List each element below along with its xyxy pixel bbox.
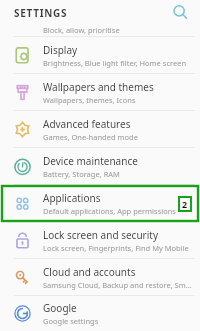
staticText: Lock screen, Fingerprints, Find My Mobil… (43, 243, 189, 253)
staticText: Google (43, 301, 77, 315)
staticText: Applications (43, 191, 101, 205)
button[interactable]: Lock screen and security (0, 222, 200, 258)
staticText: Games, One-handed mode (43, 132, 138, 142)
button[interactable]: Google (0, 296, 200, 331)
button[interactable]: Advanced features (0, 111, 200, 147)
staticText: Display (43, 43, 78, 57)
staticText: Battery, Storage, RAM (43, 169, 120, 179)
button[interactable]: Wallpapers and themes (0, 74, 200, 110)
staticText: Google settings (43, 316, 99, 326)
staticText: Lock screen and security (43, 228, 158, 242)
staticText: Brightness, Blue light filter, Home scre… (43, 58, 187, 68)
button[interactable]: Search (172, 4, 189, 21)
staticText: Default applications, App permissions (43, 206, 176, 216)
button[interactable]: Applications (0, 185, 200, 222)
staticText: 2 (182, 198, 188, 210)
staticText: SETTINGS (14, 6, 68, 20)
staticText: Block, allow, prioritise (43, 25, 120, 35)
staticText: Wallpapers, themes, Icons (43, 95, 136, 105)
button[interactable]: Display (0, 37, 200, 73)
button[interactable]: Device maintenance (0, 148, 200, 184)
staticText: Wallpapers and themes (43, 80, 154, 94)
staticText: Cloud and accounts (43, 265, 136, 279)
staticText: Advanced features (43, 117, 131, 131)
button[interactable]: Cloud and accounts (0, 259, 200, 295)
staticText: Device maintenance (43, 154, 138, 168)
staticText: Samsung Cloud, Backup and restore, Smart… (43, 280, 192, 290)
